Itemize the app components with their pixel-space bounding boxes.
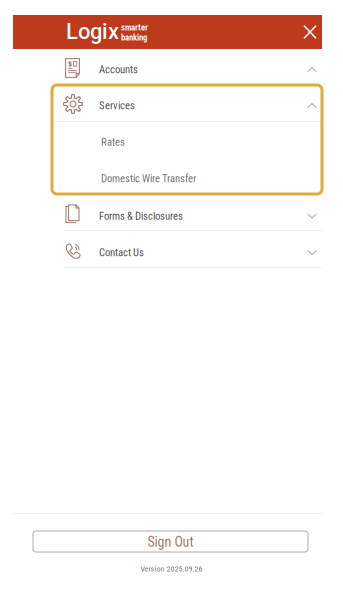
staticText: Version 2025.09.26 <box>140 564 202 573</box>
staticText: Rates <box>101 136 125 148</box>
staticText: Sign Out <box>147 534 193 550</box>
button[interactable]: Contact Us <box>13 231 322 267</box>
button[interactable]: Rates <box>52 122 322 162</box>
staticText: Domestic Wire Transfer <box>101 172 196 185</box>
staticText: Forms & Disclosures <box>99 210 183 222</box>
button[interactable]: Forms & Disclosures <box>13 194 322 230</box>
staticText: Services <box>99 99 135 112</box>
staticText: Contact Us <box>99 246 144 259</box>
button[interactable]: Services <box>52 85 322 121</box>
button[interactable]: Domestic Wire Transfer <box>52 162 322 194</box>
button[interactable]: Accounts <box>13 49 322 85</box>
button[interactable]: Sign Out <box>33 531 308 552</box>
staticText: banking <box>121 32 147 43</box>
staticText: Accounts <box>99 63 138 76</box>
staticText: Logix <box>66 19 119 44</box>
staticText: smarter <box>121 22 148 32</box>
button[interactable]: Close <box>295 15 325 49</box>
